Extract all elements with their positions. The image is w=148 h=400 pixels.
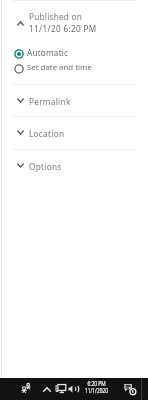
button[interactable] — [0, 6, 148, 36]
staticText: Automatic — [27, 47, 69, 58]
button[interactable] — [0, 47, 148, 62]
staticText: 6:20 PM — [84, 379, 109, 387]
staticText: 11/1/2020 — [84, 386, 109, 394]
staticText: Options — [29, 161, 62, 172]
staticText: Location — [29, 128, 65, 139]
button[interactable] — [0, 116, 148, 148]
button[interactable] — [0, 62, 148, 77]
button[interactable]: Action Center — [124, 383, 136, 395]
button[interactable]: 6:20 PM — [81, 378, 112, 400]
button[interactable]: Meet Now — [20, 382, 32, 394]
staticText: Set date and time — [27, 62, 92, 73]
button[interactable] — [0, 84, 148, 116]
staticText: 11/1/20 6:20 PM — [29, 23, 97, 34]
button[interactable]: Show hidden icons — [41, 383, 53, 395]
button[interactable]: Volume — [68, 385, 79, 393]
staticText: Published on — [29, 11, 83, 22]
button[interactable]: Network — [55, 384, 66, 393]
button[interactable] — [0, 149, 148, 181]
staticText: Permalink — [29, 96, 71, 107]
